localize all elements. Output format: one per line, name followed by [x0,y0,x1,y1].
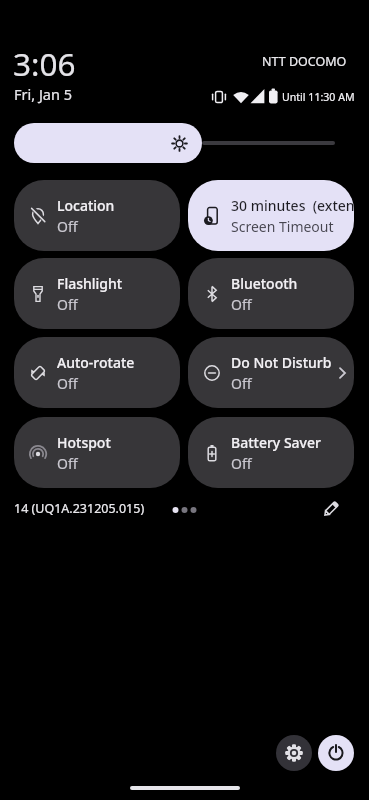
staticText: 14 (UQ1A.231205.015) [14,500,145,517]
button[interactable]: 30 minutes (extended) [188,180,354,251]
staticText: Off [57,374,78,393]
staticText: Off [231,454,252,473]
button[interactable] [276,735,312,771]
button[interactable]: Bluetooth [188,258,354,329]
staticText: NTT DOCOMO [262,53,347,70]
staticText: Location [57,196,115,215]
staticText: Flashlight [57,274,123,293]
staticText: Off [57,454,78,473]
button[interactable]: Location [14,180,180,251]
button[interactable] [318,735,354,771]
button[interactable]: Do Not Disturb [188,337,354,408]
staticText: Bluetooth [231,274,298,293]
button[interactable] [318,496,344,522]
button[interactable]: Hotspot [14,417,180,488]
staticText: Off [231,374,252,393]
staticText: Fri, Jan 5 [14,84,73,104]
staticText: Until 11:30 AM [282,90,355,104]
button[interactable]: Battery Saver [188,417,354,488]
staticText: Off [57,217,78,236]
button[interactable]: Flashlight [14,258,180,329]
staticText: Auto-rotate [57,353,135,372]
staticText: Hotspot [57,433,111,452]
staticText: Battery Saver [231,433,321,452]
staticText: Screen Timeout [231,217,334,236]
staticText: 3:06 [13,42,76,85]
staticText: Off [57,295,78,314]
staticText: Do Not Disturb [231,353,332,372]
button[interactable]: Auto-rotate [14,337,180,408]
button[interactable] [14,123,202,163]
staticText: Off [231,295,252,314]
staticText: 30 minutes (extended) [231,196,354,215]
